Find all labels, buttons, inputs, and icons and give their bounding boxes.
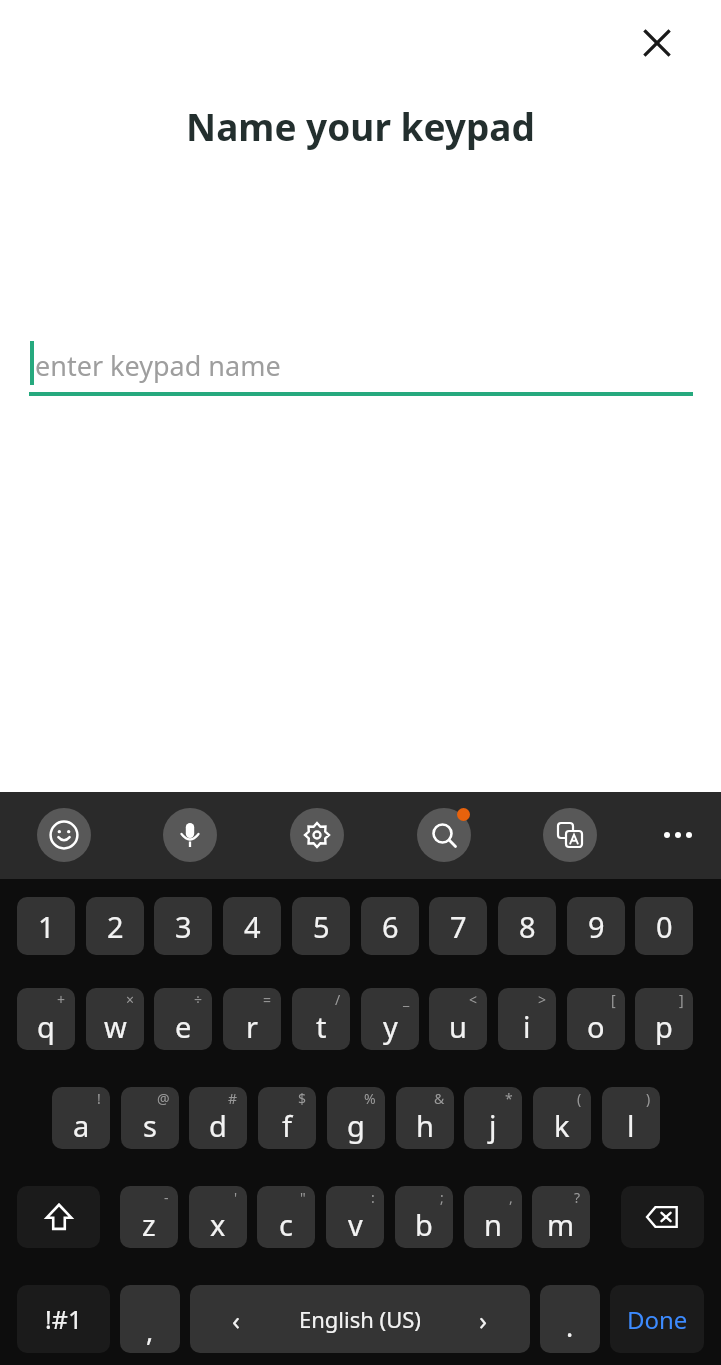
button[interactable]: Voice input: [163, 808, 217, 862]
button[interactable]: 5: [292, 897, 350, 955]
button[interactable]: ÷: [154, 988, 212, 1050]
button[interactable]: .: [540, 1285, 600, 1353]
button[interactable]: Emoji: [37, 808, 91, 862]
button[interactable]: More options: [651, 808, 705, 862]
staticText: x: [210, 1205, 226, 1244]
button[interactable]: 7: [429, 897, 487, 955]
staticText: m: [547, 1205, 575, 1244]
staticText: r: [246, 1007, 258, 1046]
staticText: 5: [313, 907, 330, 946]
staticText: l: [627, 1106, 635, 1145]
button[interactable]: 6: [361, 897, 419, 955]
button[interactable]: Backspace: [621, 1186, 704, 1248]
staticText: k: [554, 1106, 570, 1145]
staticText: 6: [382, 907, 399, 946]
button[interactable]: :: [326, 1186, 384, 1248]
staticText: ,: [146, 1312, 154, 1349]
staticText: 9: [588, 907, 605, 946]
button[interactable]: +: [17, 988, 75, 1050]
button[interactable]: ,: [120, 1285, 180, 1353]
staticText: <: [469, 990, 478, 1009]
button[interactable]: 4: [223, 897, 281, 955]
staticText: a: [73, 1106, 90, 1145]
button[interactable]: *: [464, 1087, 522, 1149]
button[interactable]: ;: [395, 1186, 453, 1248]
staticText: /: [335, 990, 341, 1009]
button[interactable]: Shift: [17, 1186, 100, 1248]
staticText: j: [489, 1106, 497, 1145]
button[interactable]: ": [257, 1186, 315, 1248]
staticText: ›: [479, 1302, 488, 1337]
button[interactable]: !#1: [17, 1285, 110, 1353]
button[interactable]: Close: [627, 13, 687, 73]
button[interactable]: >: [498, 988, 556, 1050]
staticText: !#1: [45, 1302, 83, 1336]
staticText: !: [97, 1089, 101, 1108]
staticText: ÷: [194, 990, 203, 1009]
staticText: z: [142, 1205, 156, 1244]
button[interactable]: =: [223, 988, 281, 1050]
button[interactable]: ]: [635, 988, 693, 1050]
staticText: g: [347, 1106, 365, 1145]
staticText: 1: [38, 907, 55, 946]
button[interactable]: ): [602, 1087, 660, 1149]
staticText: t: [316, 1007, 327, 1046]
staticText: w: [104, 1007, 127, 1046]
button[interactable]: (: [533, 1087, 591, 1149]
staticText: >: [538, 990, 547, 1009]
button[interactable]: _: [361, 988, 419, 1050]
staticText: ]: [679, 990, 684, 1009]
staticText: &: [434, 1089, 445, 1108]
button[interactable]: ,: [464, 1186, 522, 1248]
staticText: Done: [627, 1303, 688, 1336]
staticText: s: [143, 1106, 157, 1145]
staticText: i: [523, 1007, 531, 1046]
staticText: o: [587, 1007, 605, 1046]
button[interactable]: #: [189, 1087, 247, 1149]
button[interactable]: @: [121, 1087, 179, 1149]
staticText: (: [577, 1089, 582, 1108]
staticText: b: [415, 1205, 433, 1244]
button[interactable]: ×: [86, 988, 144, 1050]
button[interactable]: [: [567, 988, 625, 1050]
button[interactable]: Done: [610, 1285, 704, 1353]
button[interactable]: 9: [567, 897, 625, 955]
staticText: 8: [519, 907, 536, 946]
button[interactable]: <: [429, 988, 487, 1050]
staticText: ×: [126, 990, 135, 1009]
staticText: ): [646, 1089, 651, 1108]
button[interactable]: Search: [417, 808, 471, 862]
staticText: 7: [450, 907, 467, 946]
staticText: u: [449, 1007, 467, 1046]
button[interactable]: 3: [154, 897, 212, 955]
staticText: 4: [244, 907, 261, 946]
staticText: q: [37, 1007, 55, 1046]
staticText: English (US): [299, 1304, 421, 1334]
button[interactable]: ?: [532, 1186, 590, 1248]
staticText: 3: [175, 907, 192, 946]
button[interactable]: enter keypad name: [29, 332, 693, 396]
button[interactable]: 1: [17, 897, 75, 955]
button[interactable]: /: [292, 988, 350, 1050]
button[interactable]: 0: [635, 897, 693, 955]
button[interactable]: Settings: [290, 808, 344, 862]
staticText: n: [484, 1205, 502, 1244]
staticText: #: [228, 1089, 238, 1108]
button[interactable]: 2: [86, 897, 144, 955]
button[interactable]: English (US): [190, 1285, 530, 1353]
button[interactable]: Translate: [543, 808, 597, 862]
staticText: ‹: [232, 1302, 241, 1337]
button[interactable]: ': [189, 1186, 247, 1248]
staticText: +: [57, 990, 66, 1009]
staticText: enter keypad name: [35, 347, 281, 384]
button[interactable]: $: [258, 1087, 316, 1149]
staticText: ?: [574, 1188, 581, 1207]
button[interactable]: -: [120, 1186, 178, 1248]
staticText: *: [505, 1089, 513, 1108]
staticText: [: [611, 990, 616, 1009]
button[interactable]: &: [396, 1087, 454, 1149]
button[interactable]: !: [52, 1087, 110, 1149]
staticText: v: [348, 1205, 363, 1244]
button[interactable]: %: [327, 1087, 385, 1149]
button[interactable]: 8: [498, 897, 556, 955]
